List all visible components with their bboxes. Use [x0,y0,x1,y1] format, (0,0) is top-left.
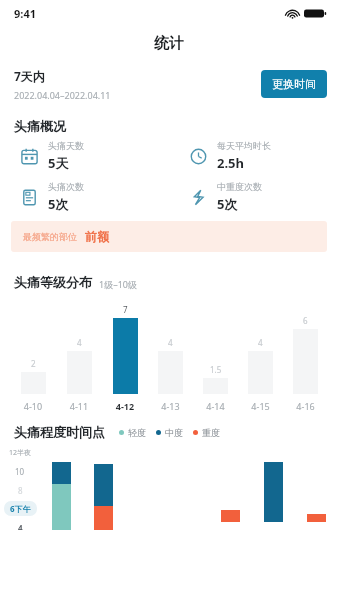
staticText: 中度 [165,427,183,438]
button[interactable] [209,448,252,530]
staticText: 头痛概况 [14,118,66,134]
staticText: 2022.04.04–2022.04.11 [14,89,111,101]
staticText: 2 [31,358,36,369]
staticText: 6 [303,315,308,326]
button[interactable]: 最频繁的部位 [11,221,327,252]
staticText: 9:41 [14,6,36,21]
button[interactable]: 更换时间 [261,70,327,98]
staticText: 重度 [202,427,220,438]
staticText: 头痛天数 [48,140,84,151]
button[interactable]: 1.5 [193,364,238,394]
staticText: 统计 [154,34,184,53]
staticText: 头痛等级分布 [14,274,92,290]
staticText: 中重度次数 [217,181,262,192]
staticText: 最频繁的部位 [23,231,77,242]
staticText: 5天 [48,154,69,172]
staticText: 更换时间 [272,77,316,91]
staticText: 2.5h [217,154,244,172]
staticText: 10 [15,466,25,477]
staticText: 1.5 [210,364,222,375]
button[interactable] [82,448,124,530]
button[interactable]: 中重度次数 [189,181,338,213]
button[interactable]: 4 [148,337,193,394]
staticText: 4-11 [56,400,102,412]
button[interactable]: 2 [10,358,56,394]
staticText: 每天平均时长 [217,140,271,151]
staticText: 前额 [85,229,109,244]
staticText: 12半夜 [9,448,32,458]
button[interactable]: 4 [56,337,102,394]
staticText: 4 [258,337,263,348]
staticText: 4 [77,337,82,348]
staticText: 7 [123,304,128,315]
staticText: 7天内 [14,68,45,84]
staticText: 4-12 [102,400,148,412]
staticText: 头痛次数 [48,181,84,192]
button[interactable] [295,448,338,530]
staticText: 轻度 [128,427,146,438]
staticText: 4-10 [10,400,56,412]
staticText: 4-15 [238,400,283,412]
button[interactable]: 4 [238,337,283,394]
button[interactable] [252,448,295,530]
button[interactable]: 头痛次数 [20,181,169,213]
staticText: 5次 [48,195,69,213]
button[interactable]: 6 [283,315,328,394]
button[interactable]: 7 [102,304,148,394]
staticText: 5次 [217,195,238,213]
staticText: 4-13 [148,400,193,412]
staticText: 头痛程度时间点 [14,424,105,440]
button[interactable]: 每天平均时长 [189,140,338,172]
button[interactable] [40,448,82,530]
staticText: 4 [168,337,173,348]
staticText: 8 [18,485,23,496]
staticText: 6下午 [10,503,31,514]
staticText: 4-16 [283,400,328,412]
button[interactable]: 头痛天数 [20,140,169,172]
staticText: 4-14 [193,400,238,412]
staticText: 4 [18,522,23,530]
staticText: 1级–10级 [99,278,137,290]
